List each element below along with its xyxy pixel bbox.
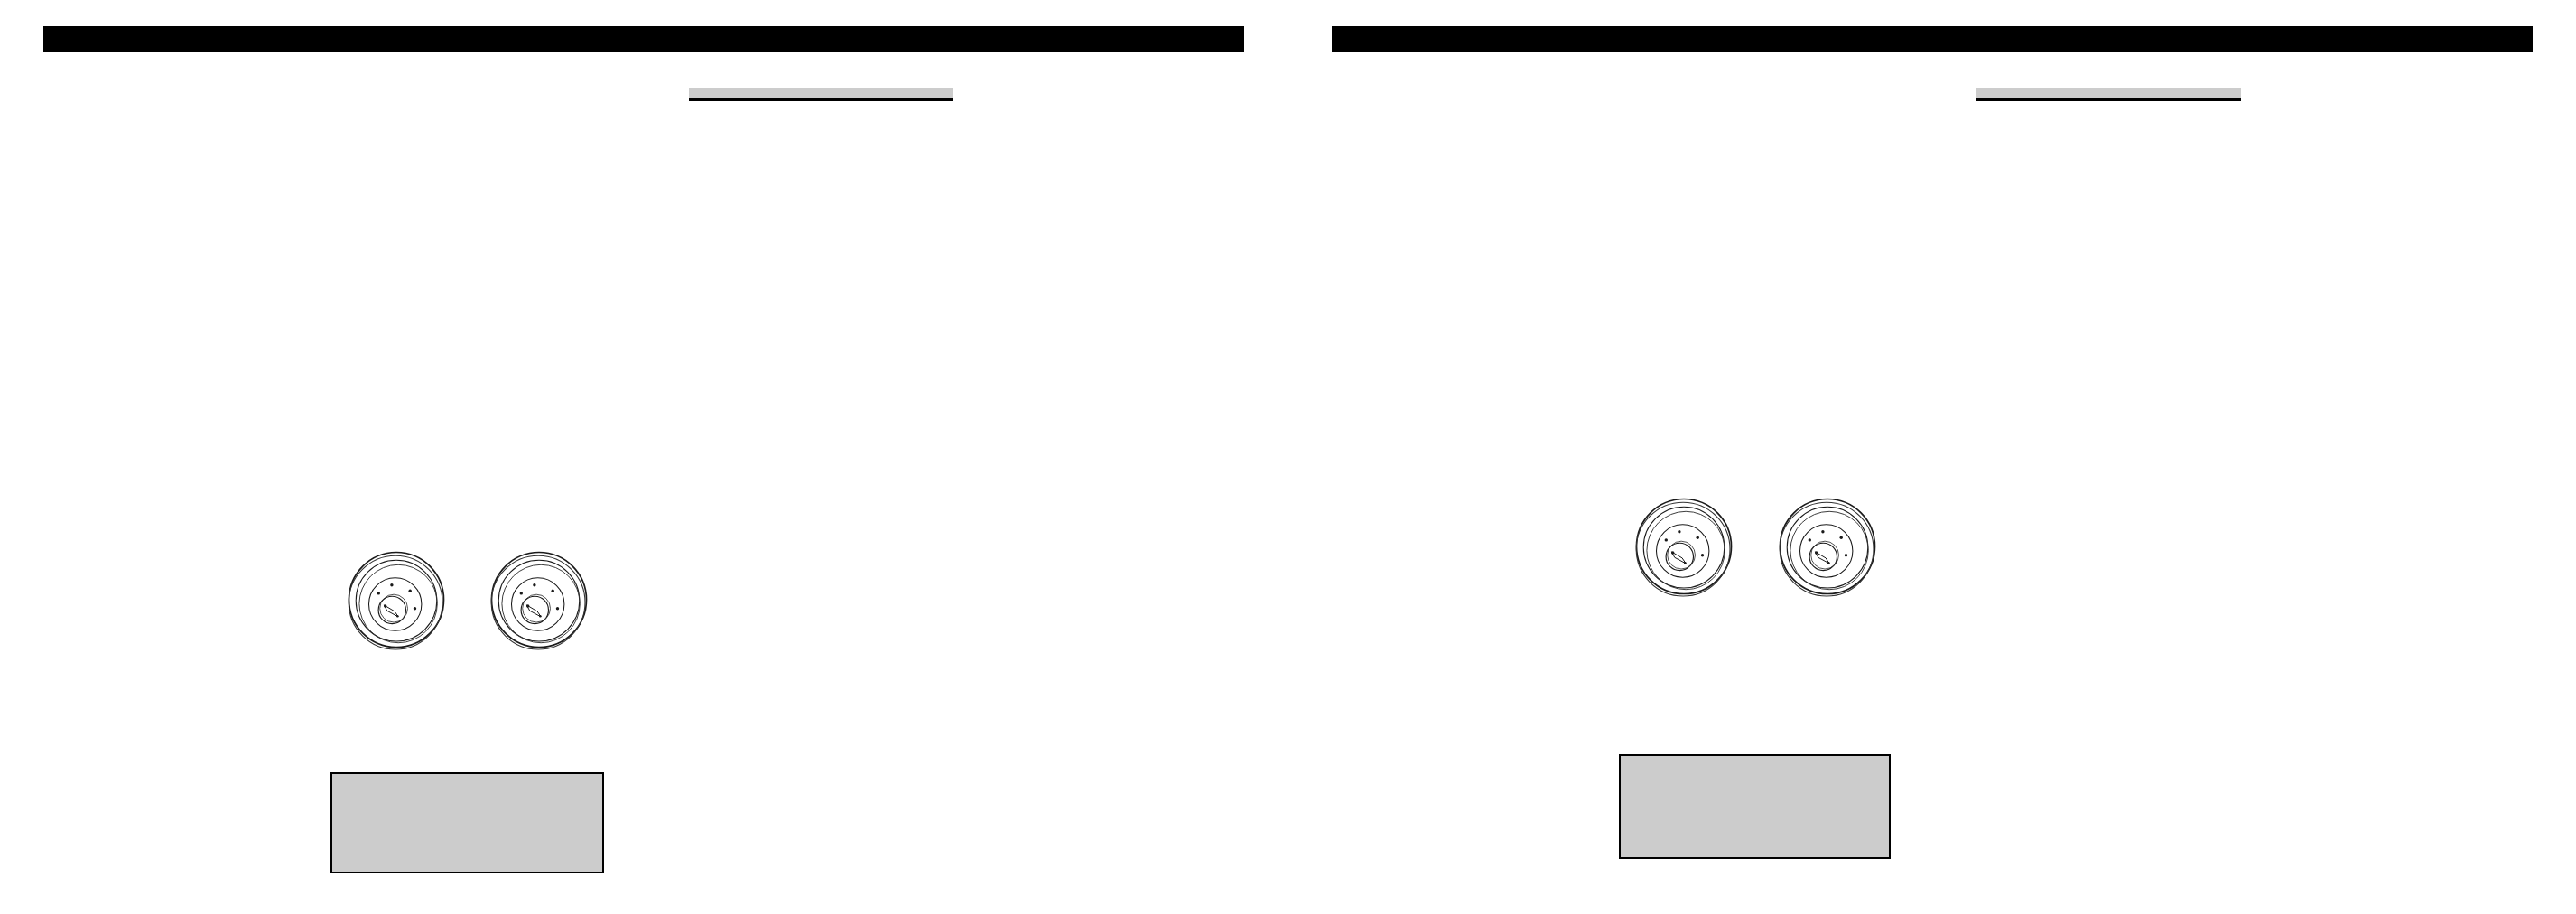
button[interactable]: Left top app bar (43, 26, 1244, 52)
button[interactable]: Right compass dial one (1636, 499, 1733, 595)
button[interactable]: Left section title (689, 88, 953, 101)
button[interactable]: Right top app bar (1332, 26, 2533, 52)
button[interactable]: Left compass dial two (491, 552, 588, 648)
button[interactable]: Right content card (1619, 754, 1891, 859)
button[interactable]: Right section title (1976, 88, 2241, 101)
button[interactable]: Left compass dial one (349, 552, 445, 648)
button[interactable]: Right compass dial two (1780, 499, 1876, 595)
button[interactable]: Left content card (330, 772, 604, 873)
